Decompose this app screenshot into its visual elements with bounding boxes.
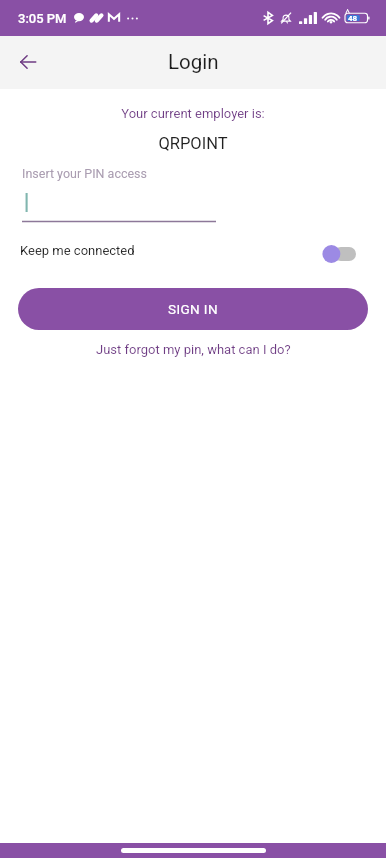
button[interactable]: SIGN IN — [18, 288, 368, 330]
staticText: Keep me connected — [20, 243, 135, 258]
staticText: Just forgot my pin, what can I do? — [96, 342, 291, 357]
staticText: SIGN IN — [168, 301, 218, 317]
staticText: QRPOINT — [0, 134, 386, 153]
button[interactable]: Keep me connected — [322, 243, 356, 265]
button[interactable]: Just forgot my pin, what can I do? — [0, 338, 386, 361]
staticText: 3:05 PM — [18, 11, 67, 26]
staticText: 48 — [348, 14, 358, 23]
staticText: Your current employer is: — [0, 106, 386, 121]
button[interactable]: PIN input — [22, 192, 216, 222]
staticText: Login — [168, 50, 219, 74]
button[interactable]: Back — [8, 42, 48, 82]
staticText: Insert your PIN access — [22, 166, 148, 181]
